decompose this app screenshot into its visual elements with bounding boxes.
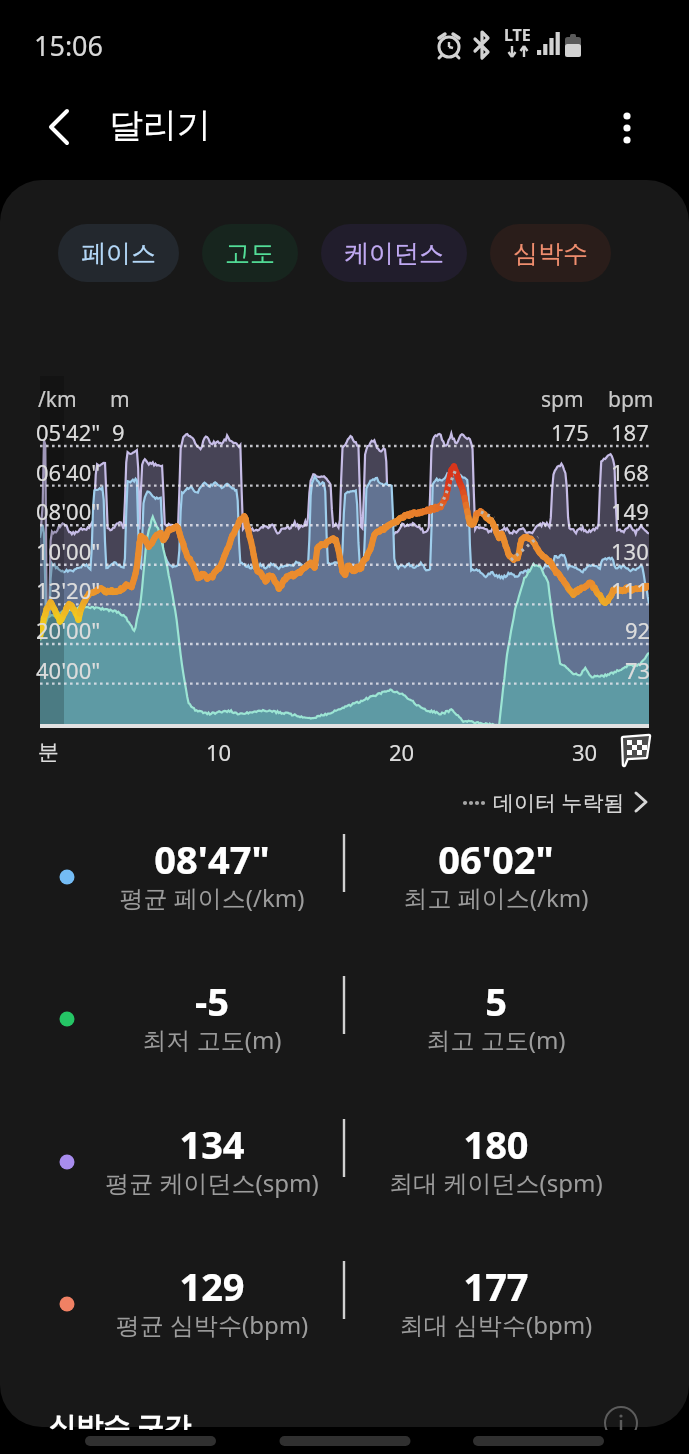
- staticText: 분: [38, 739, 59, 765]
- staticText: 심박수 구간: [49, 1407, 192, 1444]
- staticText: 최대 케이던스(spm): [364, 1166, 628, 1199]
- button[interactable]: 129: [0, 1260, 689, 1360]
- staticText: 187: [611, 417, 649, 447]
- staticText: bpm: [608, 385, 654, 414]
- staticText: 130: [611, 536, 649, 566]
- staticText: 10: [206, 737, 232, 767]
- staticText: 케이던스: [344, 238, 444, 269]
- button[interactable]: 뒤로: [33, 101, 85, 153]
- staticText: 08'47": [80, 833, 344, 885]
- button[interactable]: 완주 지점: [618, 733, 654, 769]
- staticText: spm: [541, 385, 584, 414]
- staticText: 05'42": [36, 417, 101, 447]
- staticText: 데이터 누락됨: [493, 788, 625, 817]
- staticText: 40'00": [36, 655, 101, 685]
- staticText: 175: [551, 417, 589, 447]
- staticText: 134: [80, 1118, 344, 1170]
- staticText: 평균 심박수(bpm): [80, 1308, 344, 1341]
- staticText: 168: [611, 457, 649, 487]
- staticText: 최고 고도(m): [364, 1023, 628, 1056]
- button[interactable]: 134: [0, 1118, 689, 1218]
- button[interactable]: 정보: [600, 1402, 642, 1444]
- staticText: 13'20": [36, 575, 101, 605]
- staticText: 129: [80, 1260, 344, 1312]
- staticText: 30: [572, 737, 598, 767]
- staticText: 149: [611, 496, 649, 526]
- staticText: 평균 케이던스(spm): [80, 1166, 344, 1199]
- button[interactable]: 08'47": [0, 833, 689, 933]
- staticText: 심박수: [513, 238, 588, 269]
- button[interactable]: 데이터 누락됨: [458, 782, 653, 822]
- button[interactable]: 고도: [202, 224, 298, 282]
- button[interactable]: 페이스: [58, 224, 179, 282]
- staticText: 177: [364, 1260, 628, 1312]
- staticText: 평균 페이스(/km): [80, 881, 344, 914]
- staticText: -5: [80, 975, 344, 1027]
- button[interactable]: -5: [0, 975, 689, 1075]
- staticText: 73: [625, 655, 651, 685]
- staticText: 92: [625, 615, 651, 645]
- staticText: 달리기: [109, 104, 211, 147]
- staticText: 최고 페이스(/km): [364, 881, 628, 914]
- button[interactable]: 더보기: [603, 101, 655, 153]
- staticText: 180: [364, 1118, 628, 1170]
- staticText: 111: [611, 575, 649, 605]
- staticText: 20'00": [36, 615, 101, 645]
- staticText: 9: [112, 417, 125, 447]
- staticText: 최대 심박수(bpm): [364, 1308, 628, 1341]
- staticText: /km: [38, 385, 77, 414]
- staticText: 20: [389, 737, 415, 767]
- button[interactable]: 심박수: [490, 224, 611, 282]
- staticText: 06'40": [36, 457, 101, 487]
- staticText: LTE: [504, 24, 531, 46]
- button[interactable]: 케이던스: [321, 224, 467, 282]
- staticText: 최저 고도(m): [80, 1023, 344, 1056]
- staticText: 06'02": [364, 833, 628, 885]
- staticText: 08'00": [36, 496, 101, 526]
- staticText: 5: [364, 975, 628, 1027]
- staticText: 10'00": [36, 536, 101, 566]
- staticText: 15:06: [34, 27, 104, 64]
- staticText: 페이스: [81, 238, 156, 269]
- staticText: m: [110, 385, 130, 414]
- staticText: 고도: [225, 238, 275, 269]
